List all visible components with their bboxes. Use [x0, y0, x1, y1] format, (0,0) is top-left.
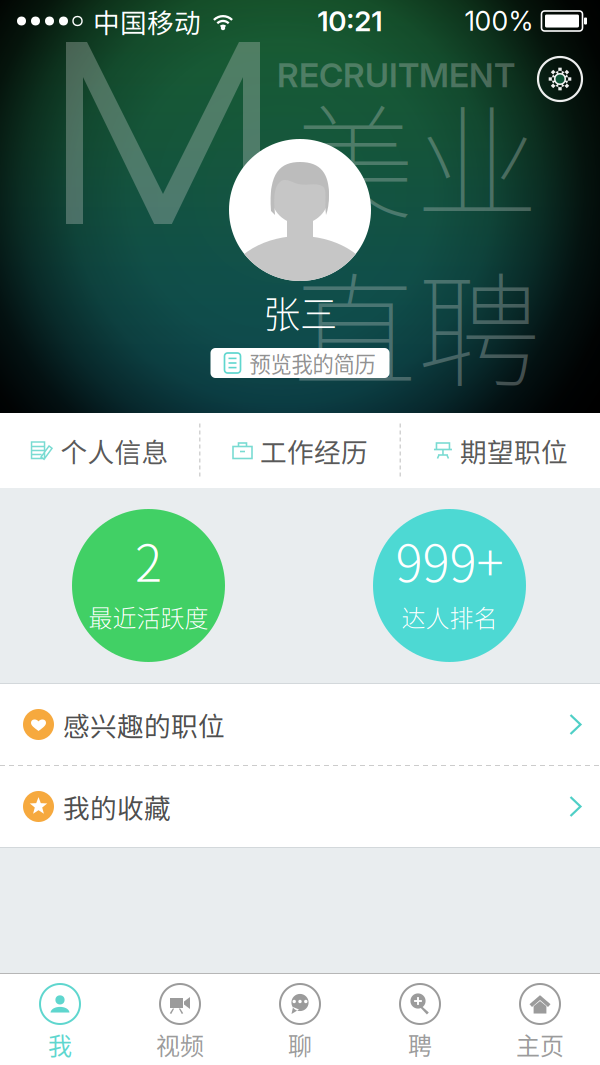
staticText: 999+ — [395, 523, 503, 596]
staticText: 我的收藏 — [63, 787, 171, 826]
staticText: RECRUITMENT — [277, 55, 515, 95]
button[interactable]: 聊 — [240, 974, 360, 1065]
button[interactable]: 预览我的简历 — [210, 348, 389, 378]
staticText: 2 — [135, 523, 162, 596]
staticText: 感兴趣的职位 — [63, 705, 225, 744]
staticText: 美业 — [291, 65, 539, 245]
button[interactable]: 主页 — [480, 974, 600, 1065]
staticText: 达人排名 — [401, 599, 497, 634]
button[interactable]: 视频 — [120, 974, 240, 1065]
button[interactable]: 期望职位 — [401, 413, 600, 488]
button[interactable]: 感兴趣的职位 — [0, 684, 600, 765]
staticText: 100% — [464, 5, 533, 37]
staticText: 主页 — [516, 1027, 564, 1062]
staticText: 张三 — [263, 285, 337, 339]
staticText: 我 — [48, 1027, 72, 1062]
staticText: 直聘 — [293, 233, 541, 413]
staticText: 预览我的简历 — [249, 348, 375, 378]
button[interactable]: 个人信息 — [0, 413, 199, 488]
staticText: 工作经历 — [260, 431, 368, 470]
staticText: 个人信息 — [60, 431, 168, 470]
staticText: 最近活跃度 — [88, 599, 208, 634]
button[interactable]: 我的收藏 — [0, 766, 600, 847]
staticText: 10:21 — [317, 4, 382, 38]
staticText: 中国移动 — [93, 2, 201, 40]
staticText: 视频 — [156, 1027, 204, 1062]
staticText: 聊 — [288, 1027, 312, 1062]
button[interactable]: 聘 — [360, 974, 480, 1065]
button[interactable]: Settings — [537, 56, 583, 102]
button[interactable]: 我 — [0, 974, 120, 1065]
staticText: 聘 — [408, 1027, 432, 1062]
staticText: 期望职位 — [460, 431, 568, 470]
button[interactable]: 工作经历 — [200, 413, 400, 488]
